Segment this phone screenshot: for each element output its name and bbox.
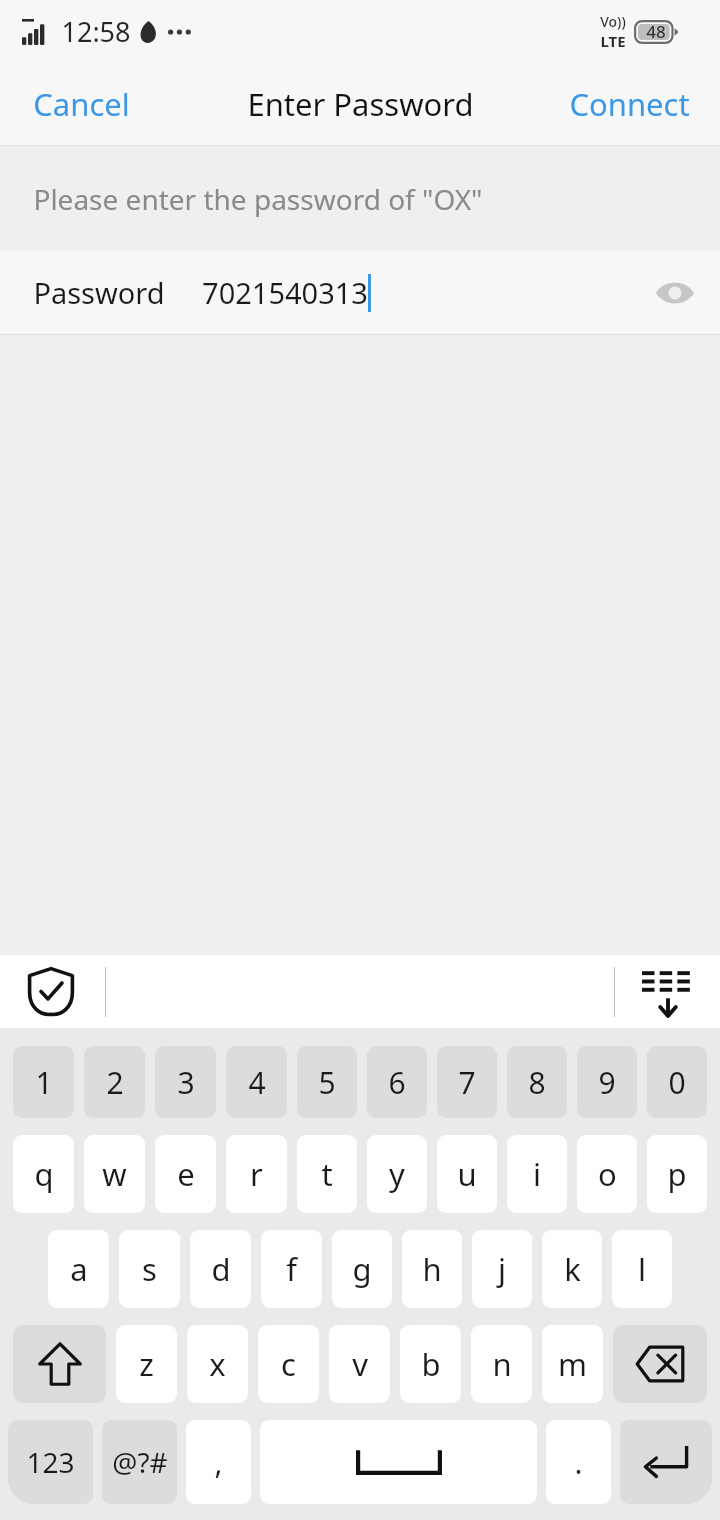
button[interactable]: Show password (630, 263, 720, 323)
staticText: , (214, 1442, 223, 1483)
staticText: o (598, 1153, 617, 1195)
button[interactable]: Space (260, 1420, 537, 1504)
button[interactable]: d (190, 1230, 251, 1308)
button[interactable]: i (507, 1135, 567, 1213)
staticText: y (389, 1153, 405, 1195)
button[interactable]: r (226, 1135, 287, 1213)
button[interactable]: x (187, 1325, 248, 1403)
staticText: 9 (598, 1062, 616, 1103)
button[interactable]: 7 (437, 1046, 497, 1118)
button[interactable]: q (13, 1135, 74, 1213)
button[interactable]: 123 (8, 1420, 93, 1504)
staticText: z (139, 1343, 154, 1385)
button[interactable]: o (577, 1135, 637, 1213)
staticText: . (574, 1442, 583, 1483)
button[interactable]: 1 (13, 1046, 74, 1118)
staticText: m (558, 1343, 587, 1385)
staticText: Connect (569, 83, 690, 125)
staticText: g (352, 1248, 372, 1290)
button[interactable]: j (472, 1230, 532, 1308)
button[interactable]: 8 (507, 1046, 567, 1118)
staticText: Please enter the password of "OX" (33, 180, 483, 218)
button[interactable]: Connect (539, 67, 720, 141)
button[interactable]: a (48, 1230, 109, 1308)
staticText: 2 (106, 1062, 124, 1103)
staticText: i (533, 1153, 541, 1195)
button[interactable]: s (119, 1230, 180, 1308)
staticText: b (421, 1343, 441, 1385)
button[interactable]: Cancel (0, 67, 163, 141)
staticText: 7 (458, 1062, 476, 1103)
button[interactable]: Shift (13, 1325, 106, 1403)
button[interactable]: t (297, 1135, 357, 1213)
staticText: Cancel (33, 83, 130, 125)
staticText: 7021540313 (202, 273, 368, 312)
button[interactable]: m (542, 1325, 603, 1403)
staticText: f (286, 1248, 297, 1290)
staticText: 1 (35, 1062, 53, 1103)
button[interactable]: f (261, 1230, 322, 1308)
staticText: q (34, 1153, 54, 1195)
button[interactable]: 0 (647, 1046, 707, 1118)
staticText: a (70, 1248, 88, 1290)
staticText: t (321, 1153, 333, 1195)
button[interactable]: 6 (367, 1046, 427, 1118)
button[interactable]: 2 (84, 1046, 145, 1118)
button[interactable]: , (186, 1420, 251, 1504)
button[interactable]: Enter (620, 1420, 712, 1504)
button[interactable]: y (367, 1135, 427, 1213)
staticText: s (142, 1248, 157, 1290)
staticText: x (209, 1343, 226, 1385)
button[interactable]: @?# (102, 1420, 177, 1504)
staticText: 3 (177, 1062, 195, 1103)
staticText: LTE (600, 31, 626, 51)
staticText: 0 (668, 1062, 686, 1103)
button[interactable]: 4 (226, 1046, 287, 1118)
button[interactable]: v (329, 1325, 390, 1403)
button[interactable]: . (546, 1420, 611, 1504)
staticText: 48 (646, 20, 666, 43)
button[interactable]: Secure input (0, 955, 102, 1028)
staticText: 5 (318, 1062, 336, 1103)
button[interactable]: k (542, 1230, 602, 1308)
staticText: c (281, 1343, 296, 1385)
staticText: 4 (248, 1062, 266, 1103)
button[interactable]: Hide keyboard (616, 956, 720, 1028)
staticText: 6 (388, 1062, 406, 1103)
button[interactable]: b (400, 1325, 461, 1403)
button[interactable]: z (116, 1325, 177, 1403)
staticText: 12:58 (61, 13, 131, 50)
button[interactable]: e (155, 1135, 216, 1213)
button[interactable]: p (647, 1135, 707, 1213)
staticText: j (498, 1248, 506, 1290)
staticText: @?# (112, 1443, 168, 1481)
staticText: d (211, 1248, 231, 1290)
button[interactable]: l (612, 1230, 672, 1308)
button[interactable]: 5 (297, 1046, 357, 1118)
staticText: h (422, 1248, 442, 1290)
staticText: Password (33, 273, 165, 312)
staticText: Vo)) (600, 12, 626, 31)
staticText: l (638, 1248, 646, 1290)
staticText: e (177, 1153, 195, 1195)
staticText: n (492, 1343, 512, 1385)
button[interactable]: h (402, 1230, 462, 1308)
button[interactable]: w (84, 1135, 145, 1213)
button[interactable]: 9 (577, 1046, 637, 1118)
button[interactable]: u (437, 1135, 497, 1213)
staticText: 8 (528, 1062, 546, 1103)
button[interactable]: Backspace (613, 1325, 707, 1403)
button[interactable]: n (471, 1325, 532, 1403)
button[interactable]: c (258, 1325, 319, 1403)
staticText: 123 (26, 1443, 75, 1481)
staticText: v (352, 1343, 368, 1385)
staticText: u (457, 1153, 477, 1195)
button[interactable]: g (332, 1230, 392, 1308)
staticText: r (250, 1153, 263, 1195)
staticText: w (102, 1153, 127, 1195)
button[interactable]: 3 (155, 1046, 216, 1118)
staticText: Enter Password (247, 83, 474, 125)
staticText: p (667, 1153, 687, 1195)
staticText: k (564, 1248, 581, 1290)
